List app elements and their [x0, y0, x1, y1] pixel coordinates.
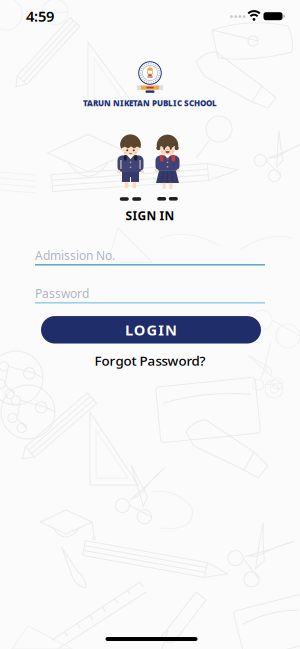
button[interactable]: Admission No. [35, 247, 265, 265]
staticText: SIGN IN [125, 208, 174, 223]
staticText: Forgot Password? [94, 352, 205, 369]
staticText: 4:59 [26, 6, 54, 26]
staticText: LOGIN [125, 320, 177, 340]
staticText: Admission No. [35, 247, 115, 263]
button[interactable]: Password [35, 285, 265, 303]
button[interactable]: Forgot Password? [94, 352, 205, 369]
button[interactable]: LOGIN [41, 316, 261, 344]
staticText: TARUN NIKETAN PUBLIC SCHOOL [83, 98, 217, 108]
staticText: Password [35, 285, 89, 301]
